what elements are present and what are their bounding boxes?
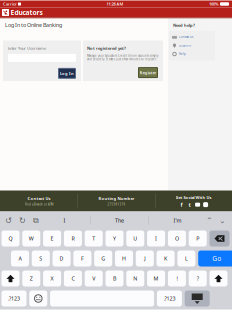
staticText: 275981378: [107, 203, 125, 206]
staticText: A: [18, 255, 21, 262]
staticText: Contact Us: [27, 196, 50, 201]
button[interactable]: .?123: [157, 290, 182, 306]
button[interactable]: E: [43, 230, 61, 246]
staticText: ?: [197, 275, 199, 282]
button[interactable]: Emoji: [29, 290, 47, 306]
staticText: B: [113, 275, 116, 282]
staticText: Get Social With Us: [176, 195, 212, 200]
staticText: t: [189, 201, 191, 208]
button[interactable]: Go: [198, 250, 232, 266]
staticText: I'm: [173, 217, 181, 224]
button[interactable]: [50, 290, 154, 306]
button[interactable]: .?123: [1, 290, 26, 306]
staticText: P: [196, 235, 199, 242]
button[interactable]: P: [189, 230, 207, 246]
button[interactable]: Help: [169, 50, 215, 58]
staticText: 11:28 AM: [106, 1, 123, 7]
staticText: X: [51, 275, 54, 282]
staticText: R: [71, 235, 74, 242]
staticText: I: [63, 217, 65, 224]
staticText: ↻: [19, 216, 26, 225]
staticText: Locations: [179, 44, 191, 47]
button[interactable]: I: [147, 230, 165, 246]
button[interactable]: H: [115, 250, 133, 266]
staticText: Z: [30, 275, 33, 282]
button[interactable]: F: [73, 250, 91, 266]
button[interactable]: !: [168, 270, 186, 286]
button[interactable]: Routing Number: [78, 190, 155, 211]
staticText: Contact Us: [179, 35, 193, 39]
button[interactable]: Log In: [58, 68, 76, 79]
button[interactable]: W: [22, 230, 40, 246]
staticText: Not registered yet?: [87, 46, 126, 51]
button[interactable]: J: [136, 250, 154, 266]
button[interactable]: K: [157, 250, 175, 266]
button[interactable]: ?: [189, 270, 207, 286]
staticText: E: [51, 235, 54, 242]
button[interactable]: N: [126, 270, 144, 286]
staticText: Carrier: [3, 1, 17, 7]
staticText: Y: [113, 235, 116, 242]
button[interactable]: C: [64, 270, 82, 286]
staticText: G: [101, 255, 105, 262]
button[interactable]: L: [177, 250, 195, 266]
button[interactable]: Q: [1, 230, 19, 246]
staticText: Register: [139, 70, 156, 75]
button[interactable]: O: [168, 230, 186, 246]
staticText: V: [92, 275, 95, 282]
button[interactable]: A: [11, 250, 29, 266]
staticText: Manage your Educators Credit Union accou…: [87, 54, 158, 61]
button[interactable]: X: [43, 270, 61, 286]
staticText: N: [133, 275, 137, 282]
staticText: H: [122, 255, 126, 262]
staticText: K: [164, 255, 167, 262]
button[interactable]: D: [53, 250, 71, 266]
button[interactable]: Y: [105, 230, 123, 246]
button[interactable]: M: [147, 270, 165, 286]
button[interactable]: R: [64, 230, 82, 246]
staticText: !: [176, 275, 177, 282]
staticText: f: [181, 201, 183, 208]
button[interactable]: Shift: [209, 270, 227, 286]
staticText: U: [133, 235, 137, 242]
button[interactable]: Shift: [1, 270, 19, 286]
button[interactable]: Contact Us: [0, 190, 77, 211]
button[interactable]: V: [85, 270, 103, 286]
button[interactable]: Z: [22, 270, 40, 286]
staticText: Q: [8, 235, 12, 242]
staticText: O: [175, 235, 179, 242]
staticText: W: [29, 235, 34, 242]
staticText: Help: [179, 52, 186, 56]
button[interactable]: Twitter: [187, 202, 192, 207]
staticText: Need help?: [173, 22, 195, 28]
staticText: Educators: [10, 8, 42, 17]
staticText: 100%: [209, 1, 219, 7]
staticText: J: [144, 255, 145, 262]
staticText: ⧉: [33, 217, 39, 224]
button[interactable]: Educators Credit Union: [2, 9, 9, 16]
button[interactable]: T: [85, 230, 103, 246]
staticText: .?123: [163, 295, 175, 302]
button[interactable]: Hide keyboard: [185, 290, 210, 306]
staticText: Routing Number: [98, 196, 134, 201]
button[interactable]: Register: [138, 67, 158, 78]
staticText: I: [155, 235, 157, 242]
staticText: Log In: [60, 71, 74, 76]
button[interactable]: Locations: [169, 41, 215, 50]
button[interactable]: Instagram: [203, 202, 208, 207]
button[interactable]: YouTube: [195, 203, 200, 207]
button[interactable]: G: [94, 250, 112, 266]
staticText: Enter Your Username: [8, 46, 46, 51]
button[interactable]: U: [126, 230, 144, 246]
staticText: L: [185, 255, 188, 262]
button[interactable]: Contact Us: [169, 33, 215, 41]
staticText: M: [154, 275, 159, 282]
button[interactable]: S: [32, 250, 50, 266]
button[interactable]: B: [105, 270, 123, 286]
button[interactable]: Delete: [209, 230, 229, 246]
button[interactable]: Facebook: [179, 202, 184, 207]
staticText: S: [39, 255, 42, 262]
staticText: Go: [212, 254, 221, 263]
staticText: .?123: [8, 295, 20, 302]
staticText: The: [115, 217, 124, 224]
